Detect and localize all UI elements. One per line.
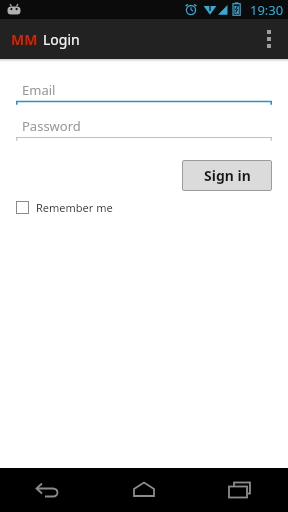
staticText: Remember me <box>36 200 113 215</box>
staticText: Sign in <box>204 166 251 185</box>
button[interactable]: Home <box>96 468 192 512</box>
button[interactable]: Remember me <box>16 200 113 215</box>
staticText: Password <box>22 117 81 135</box>
staticText: MM <box>11 30 38 49</box>
staticText: Login <box>43 30 80 49</box>
staticText: 19:30 <box>250 1 284 19</box>
staticText: Email <box>22 81 56 99</box>
button[interactable]: More options <box>250 19 288 59</box>
button[interactable]: Back <box>0 468 96 512</box>
button[interactable]: Sign in <box>182 160 272 191</box>
button[interactable]: Recent apps <box>192 468 288 512</box>
button[interactable]: Password <box>16 115 272 141</box>
button[interactable]: Email <box>16 79 272 105</box>
